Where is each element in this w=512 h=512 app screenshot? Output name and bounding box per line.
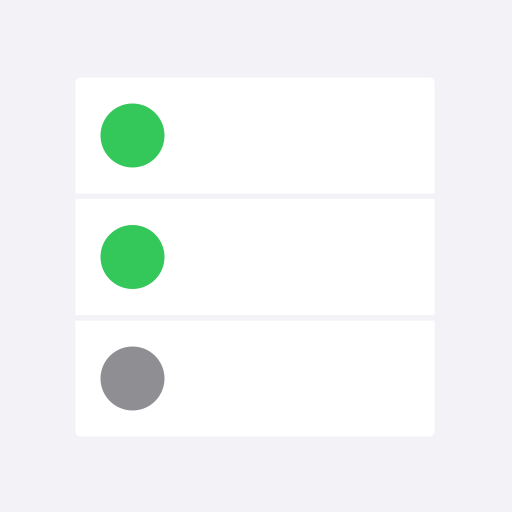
button[interactable]: Active xyxy=(75,77,434,193)
button[interactable]: Inactive xyxy=(75,320,434,436)
button[interactable]: Active xyxy=(75,199,434,315)
